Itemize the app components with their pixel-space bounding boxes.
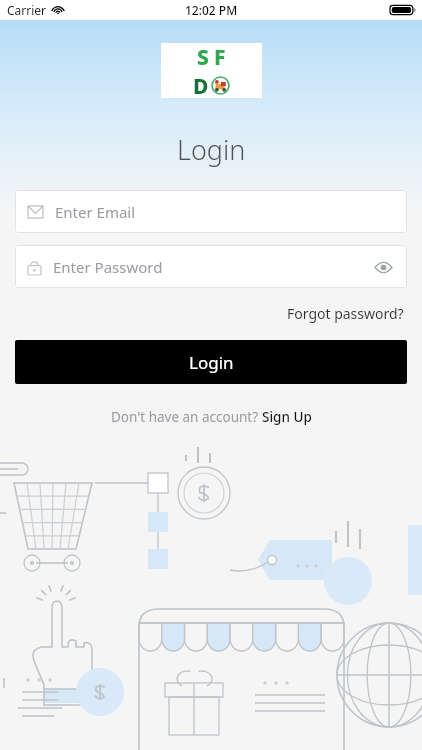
staticText: Enter Password <box>53 257 372 277</box>
staticText: Login <box>189 351 234 374</box>
button[interactable]: Show password <box>372 256 394 278</box>
staticText: D <box>193 72 209 98</box>
staticText: Carrier <box>7 2 47 18</box>
button[interactable]: Forgot password? <box>283 300 408 327</box>
staticText: Don't have an account? <box>111 408 262 426</box>
staticText: Login <box>177 131 246 168</box>
button[interactable]: Don't have an account? <box>0 408 422 426</box>
button[interactable]: Login <box>15 340 407 384</box>
staticText: Forgot password? <box>287 304 404 323</box>
staticText: Enter Email <box>55 202 394 222</box>
staticText: S <box>197 43 209 72</box>
staticText: 12:02 PM <box>185 2 238 18</box>
button[interactable]: Enter Password <box>15 245 407 288</box>
staticText: F <box>214 43 226 72</box>
staticText: Sign Up <box>262 408 312 426</box>
button[interactable]: Enter Email <box>15 190 407 233</box>
